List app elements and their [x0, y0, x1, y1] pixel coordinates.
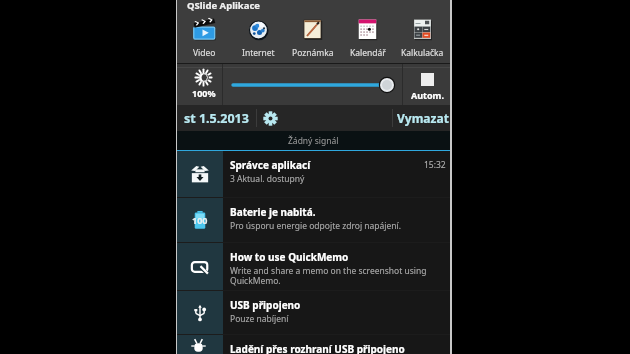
button[interactable]: Autom. [405, 64, 450, 105]
button[interactable]: How to use QuickMemo [177, 243, 450, 290]
staticText: st 1.5.2013 [184, 110, 249, 127]
button[interactable]: Kalendář [340, 17, 395, 59]
staticText: Správce aplikací [230, 158, 311, 172]
staticText: Write and share a memo on the screenshot… [230, 265, 427, 287]
button[interactable]: Brightness [185, 64, 222, 105]
button[interactable]: Poznámka [285, 17, 340, 59]
staticText: Kalkulačka [401, 47, 444, 59]
button[interactable]: USB připojeno [177, 291, 450, 334]
button[interactable]: Settings [257, 105, 283, 131]
staticText: Baterie je nabitá. [230, 205, 316, 219]
staticText: 100 [192, 214, 208, 226]
button[interactable]: Správce aplikací [177, 151, 450, 197]
button[interactable]: Internet [231, 17, 285, 59]
staticText: Vymazat [397, 110, 449, 126]
button[interactable]: Kalkulačka [395, 17, 450, 59]
staticText: 100% [192, 87, 216, 99]
staticText: Pro úsporu energie odpojte zdroj napájen… [230, 220, 402, 232]
staticText: QSlide Aplikace [187, 0, 260, 12]
staticText: Autom. [411, 89, 444, 101]
staticText: 3 Aktual. dostupný [230, 173, 305, 185]
staticText: Kalendář [350, 47, 386, 59]
button[interactable]: 100 [177, 198, 450, 242]
staticText: Internet [242, 47, 275, 59]
button[interactable]: Video [177, 17, 231, 59]
staticText: Video [193, 47, 216, 59]
staticText: How to use QuickMemo [230, 250, 349, 264]
staticText: 15:32 [424, 159, 446, 171]
staticText: Žádný signál [288, 135, 339, 147]
staticText: Pouze nabíjení [230, 313, 289, 325]
button[interactable]: Ladění přes rozhraní USB připojeno [177, 335, 450, 354]
staticText: Poznámka [292, 47, 334, 59]
button[interactable]: Brightness slider [225, 76, 400, 93]
button[interactable]: Vymazat [389, 110, 450, 126]
staticText: USB připojeno [230, 298, 301, 312]
staticText: Ladění přes rozhraní USB připojeno [230, 342, 405, 354]
